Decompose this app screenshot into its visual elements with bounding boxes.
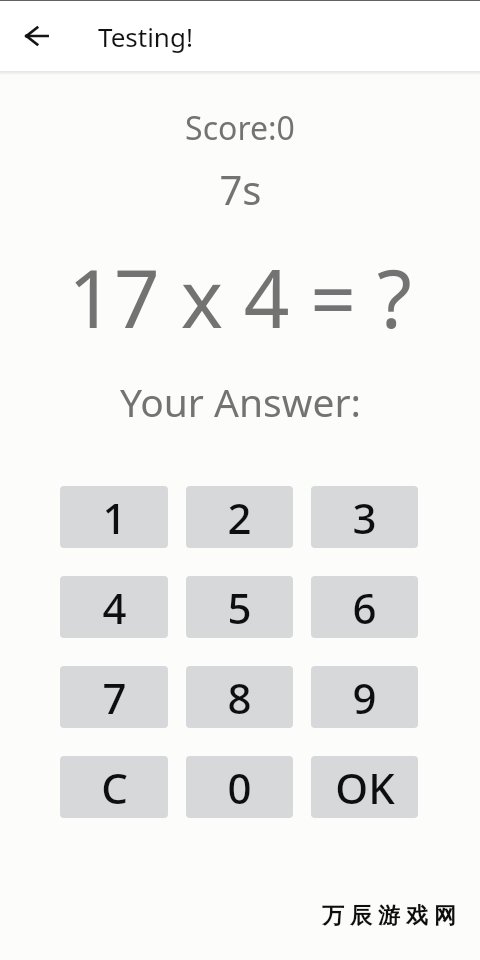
staticText: 3 bbox=[352, 489, 377, 546]
staticText: 9 bbox=[352, 669, 377, 726]
staticText: Testing! bbox=[98, 19, 193, 54]
button[interactable]: Back bbox=[12, 12, 60, 60]
staticText: 1 bbox=[102, 489, 127, 546]
button[interactable]: 2 bbox=[186, 486, 293, 548]
staticText: Your Answer: bbox=[120, 375, 361, 428]
button[interactable]: 9 bbox=[311, 666, 418, 728]
staticText: 7s bbox=[219, 162, 262, 216]
staticText: OK bbox=[335, 759, 395, 816]
staticText: Score:0 bbox=[185, 106, 295, 150]
button[interactable]: 0 bbox=[186, 756, 293, 818]
button[interactable]: C bbox=[60, 756, 168, 818]
button[interactable]: OK bbox=[311, 756, 418, 818]
staticText: C bbox=[101, 759, 128, 816]
staticText: 0 bbox=[227, 759, 252, 816]
button[interactable]: 3 bbox=[311, 486, 418, 548]
staticText: 8 bbox=[227, 669, 252, 726]
button[interactable]: 4 bbox=[60, 576, 168, 638]
staticText: 4 bbox=[102, 579, 127, 636]
staticText: 7 bbox=[102, 669, 127, 726]
staticText: 6 bbox=[352, 579, 377, 636]
button[interactable]: 1 bbox=[60, 486, 168, 548]
button[interactable]: 8 bbox=[186, 666, 293, 728]
staticText: 17 x 4 = ? bbox=[68, 242, 412, 351]
button[interactable]: 5 bbox=[186, 576, 293, 638]
staticText: 万辰游戏网 bbox=[319, 902, 459, 930]
staticText: 2 bbox=[227, 489, 252, 546]
button[interactable]: 6 bbox=[311, 576, 418, 638]
button[interactable]: 7 bbox=[60, 666, 168, 728]
staticText: 5 bbox=[227, 579, 252, 636]
